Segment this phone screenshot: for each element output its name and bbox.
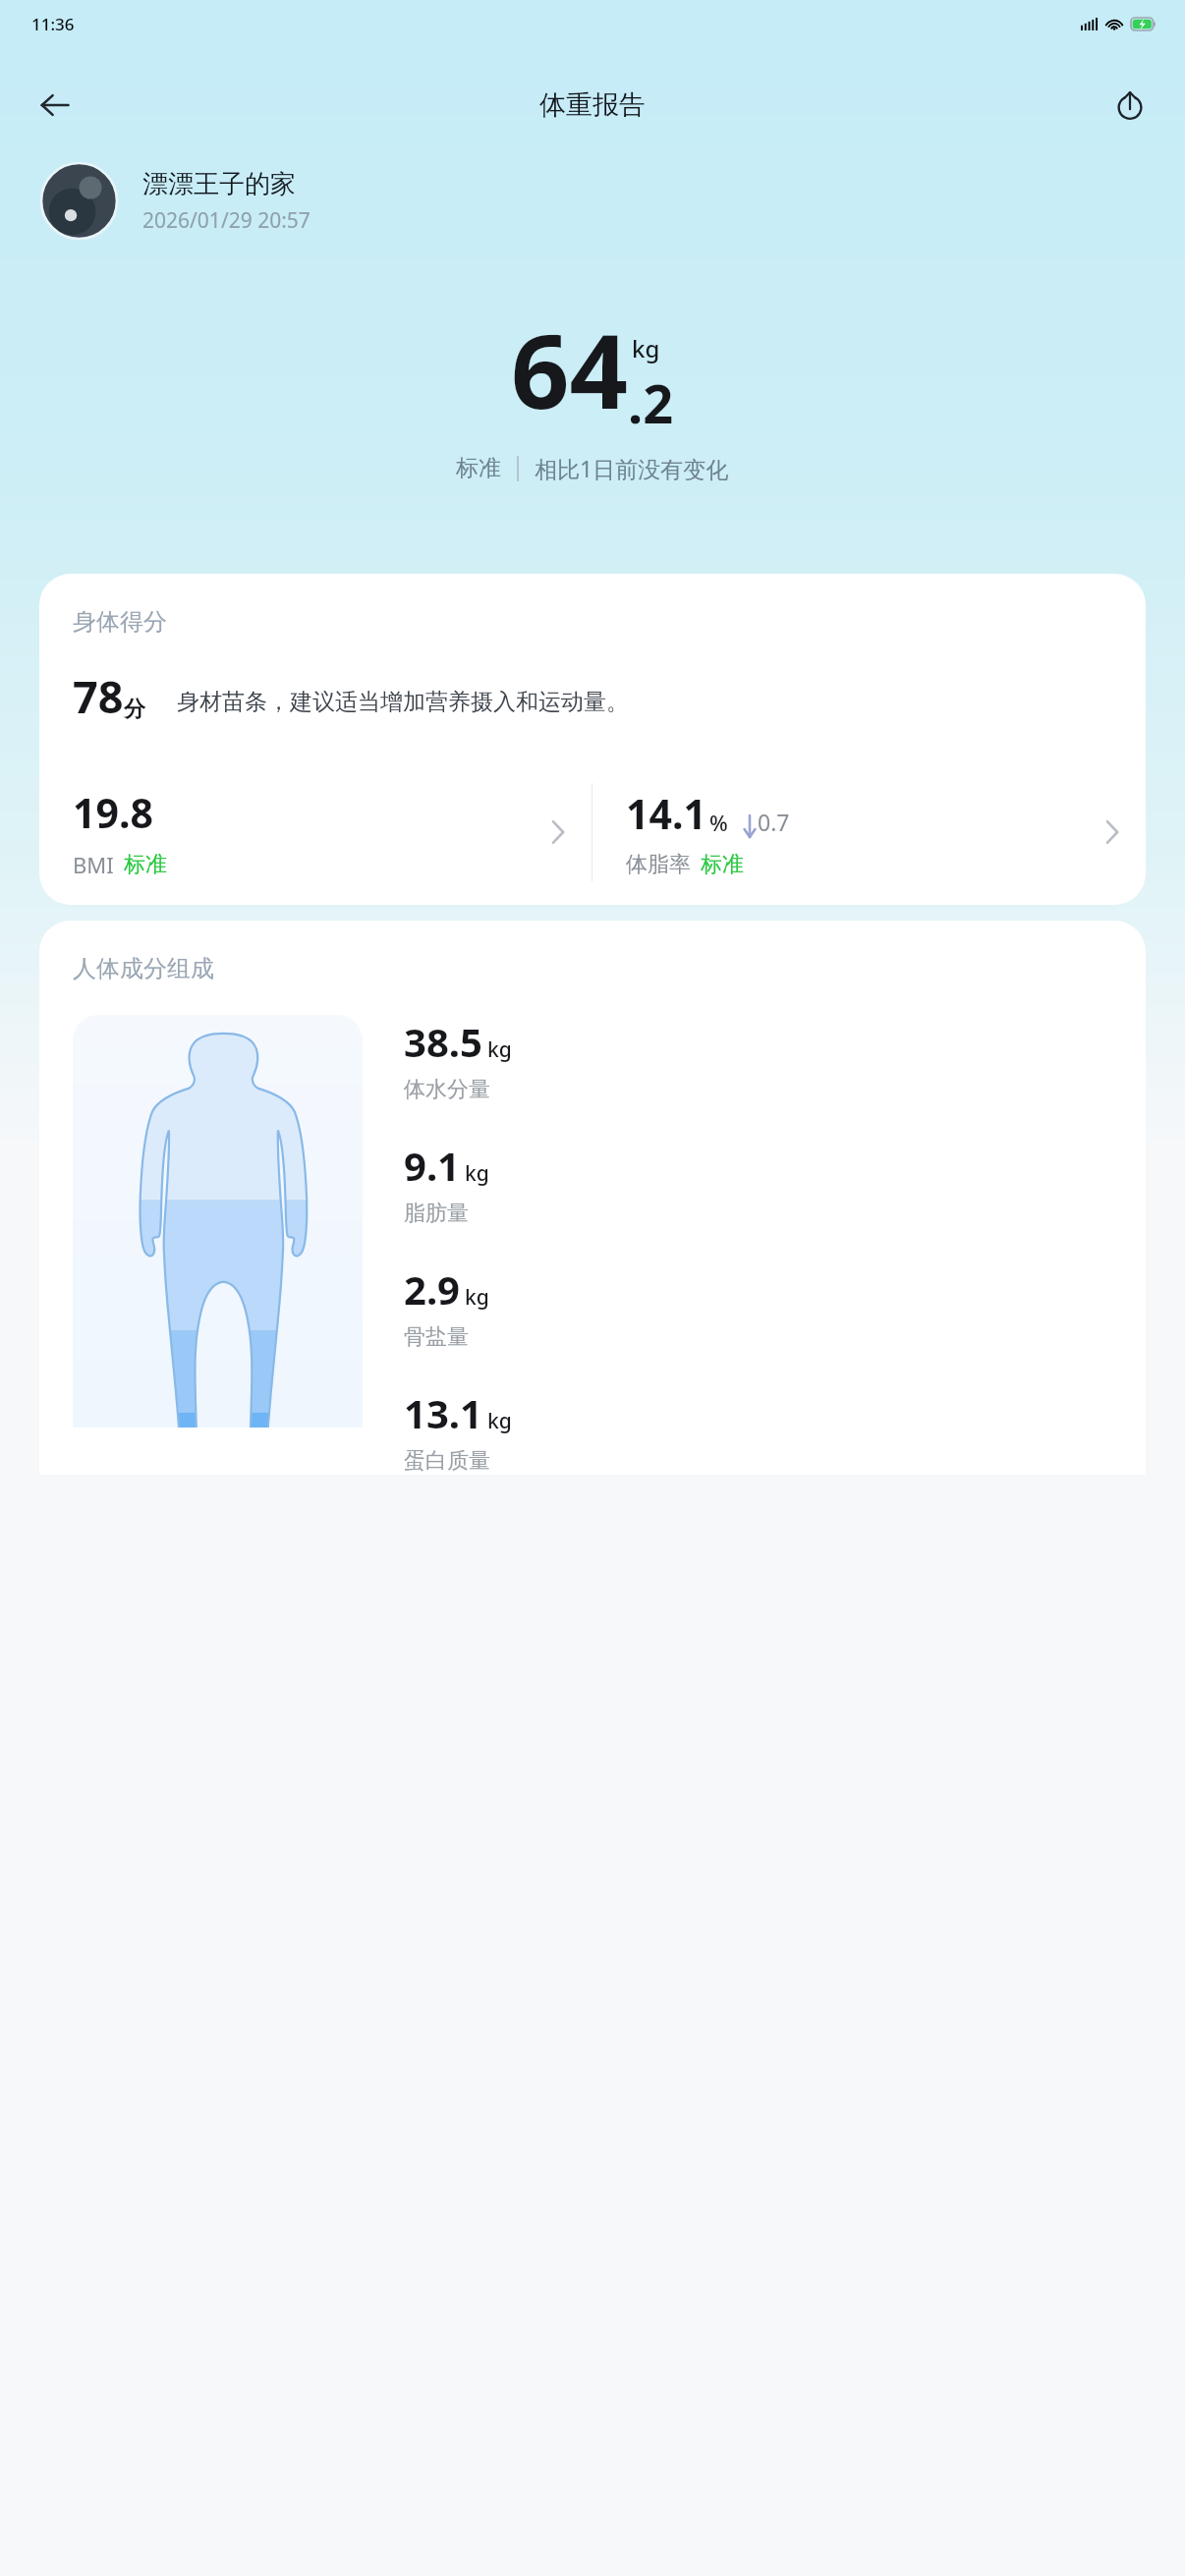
staticText: 分 bbox=[124, 696, 145, 723]
staticText: kg bbox=[465, 1283, 489, 1312]
button[interactable]: Share bbox=[1100, 76, 1159, 135]
staticText: 0.7 bbox=[758, 807, 790, 837]
staticText: kg bbox=[487, 1407, 512, 1435]
staticText: 身材苗条，建议适当增加营养摄入和运动量。 bbox=[177, 688, 629, 716]
staticText: 标准 bbox=[701, 851, 744, 878]
staticText: BMI bbox=[73, 850, 114, 879]
button[interactable]: 漂漂王子的家 bbox=[41, 163, 1185, 239]
button[interactable]: 19.8 bbox=[39, 769, 592, 895]
staticText: 标准 bbox=[456, 454, 501, 482]
staticText: kg bbox=[487, 1036, 512, 1064]
staticText: 2.9 bbox=[404, 1262, 460, 1316]
button[interactable]: Back bbox=[26, 76, 85, 135]
staticText: 9.1 bbox=[404, 1139, 460, 1192]
staticText: 蛋白质量 bbox=[404, 1447, 490, 1475]
staticText: 38.5 bbox=[404, 1015, 482, 1068]
staticText: 身体得分 bbox=[73, 607, 167, 637]
staticText: 脂肪量 bbox=[404, 1200, 469, 1227]
staticText: 19.8 bbox=[73, 785, 153, 840]
staticText: 11:36 bbox=[31, 13, 75, 35]
staticText: 78 bbox=[73, 666, 124, 726]
staticText: 标准 bbox=[124, 851, 167, 878]
staticText: % bbox=[709, 808, 728, 837]
staticText: 骨盐量 bbox=[404, 1323, 469, 1351]
staticText: 漂漂王子的家 bbox=[142, 168, 296, 200]
staticText: kg bbox=[632, 332, 660, 364]
staticText: 体脂率 bbox=[626, 851, 691, 878]
staticText: 13.1 bbox=[404, 1386, 482, 1439]
staticText: 2026/01/29 20:57 bbox=[142, 206, 310, 235]
staticText: 64 bbox=[511, 300, 628, 439]
button[interactable]: 14.1 bbox=[592, 769, 1146, 895]
staticText: .2 bbox=[628, 366, 674, 439]
staticText: 人体成分组成 bbox=[73, 954, 214, 983]
staticText: 体重报告 bbox=[539, 88, 646, 122]
staticText: 相比1日前没有变化 bbox=[535, 453, 729, 483]
staticText: 14.1 bbox=[626, 786, 706, 841]
staticText: 体水分量 bbox=[404, 1076, 490, 1103]
staticText: kg bbox=[465, 1159, 489, 1188]
